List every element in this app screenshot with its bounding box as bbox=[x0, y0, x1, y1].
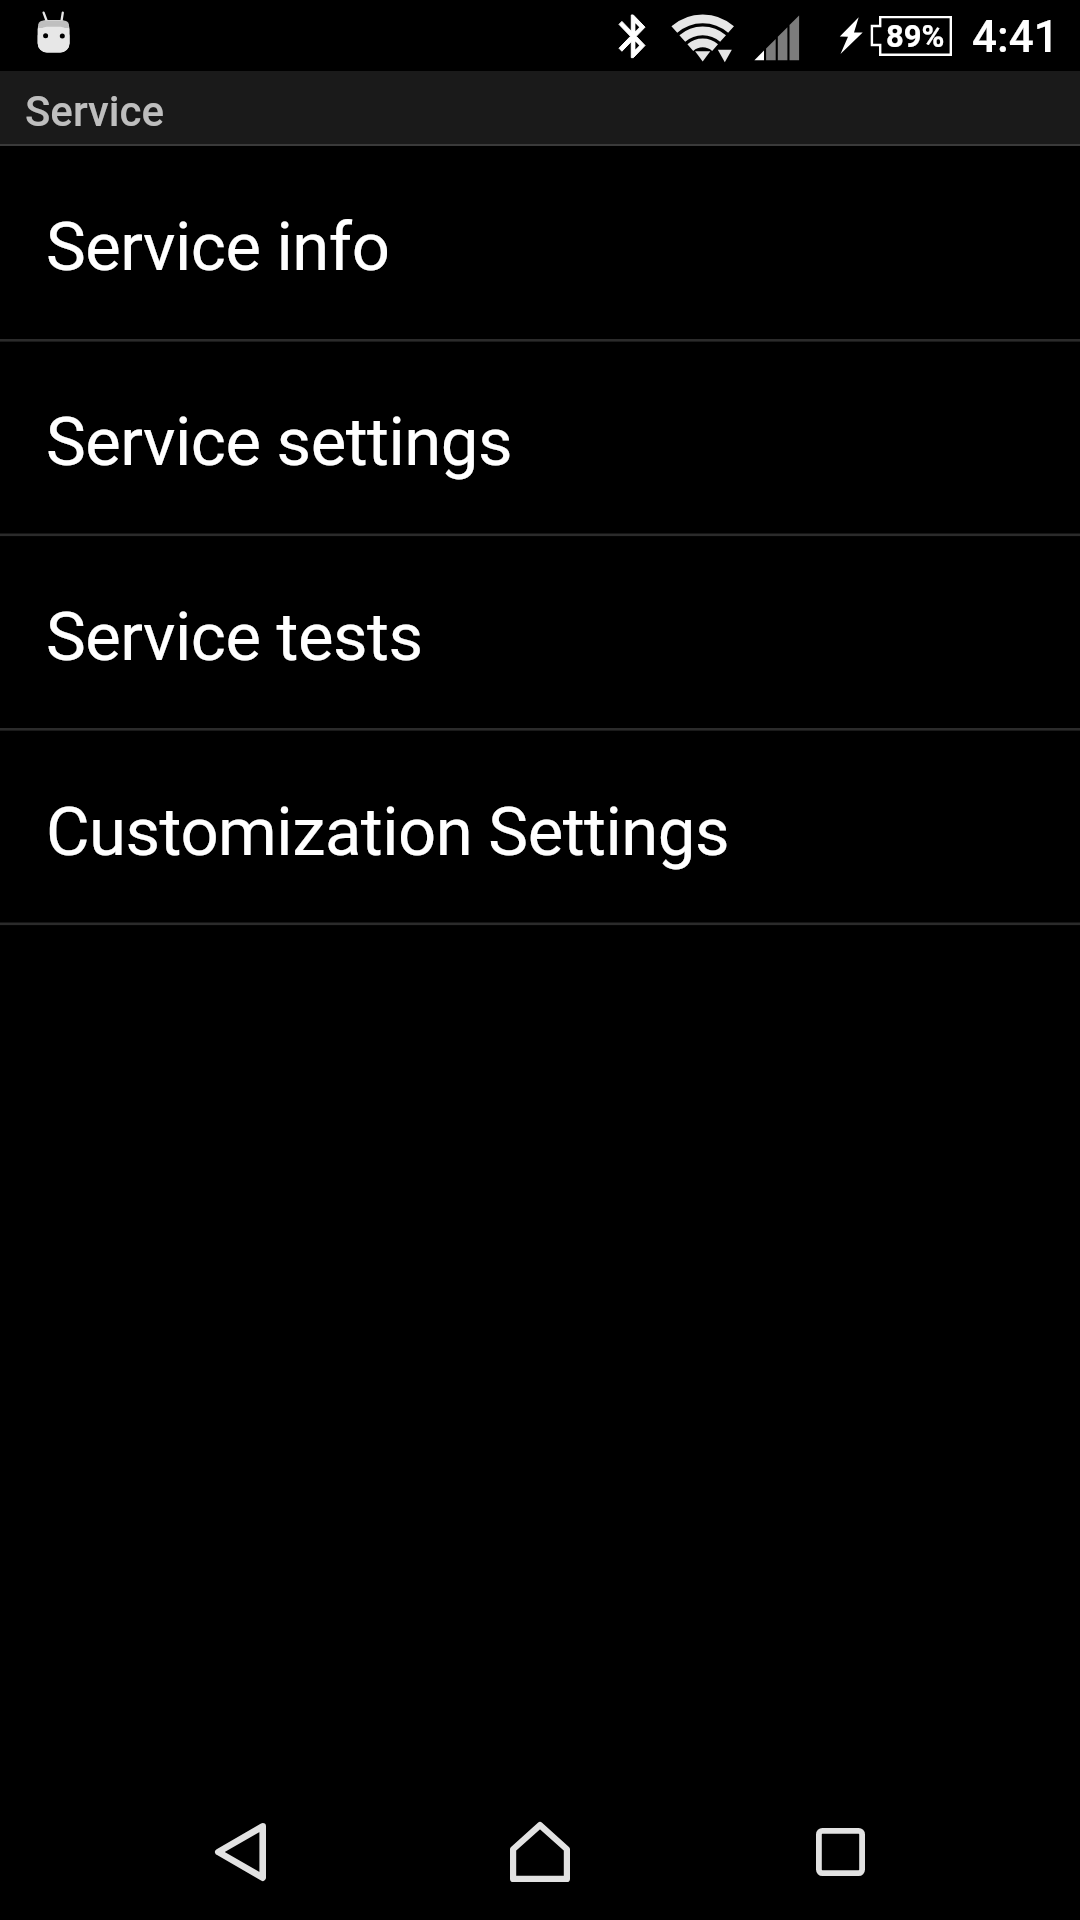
button[interactable]: Recent apps bbox=[780, 1792, 900, 1912]
button[interactable]: Service info bbox=[0, 146, 1080, 341]
button[interactable]: Service settings bbox=[0, 341, 1080, 536]
staticText: Service info bbox=[46, 208, 390, 287]
button[interactable]: Back bbox=[180, 1792, 300, 1912]
button[interactable]: Customization Settings bbox=[0, 731, 1080, 926]
staticText: Customization Settings bbox=[46, 793, 730, 872]
staticText: Service tests bbox=[46, 598, 423, 677]
staticText: 4:41 bbox=[972, 11, 1059, 61]
button[interactable]: Service tests bbox=[0, 536, 1080, 731]
staticText: 89% bbox=[886, 18, 945, 54]
staticText: Service bbox=[25, 87, 165, 136]
button[interactable]: Home bbox=[480, 1792, 600, 1912]
staticText: Service settings bbox=[46, 403, 513, 482]
